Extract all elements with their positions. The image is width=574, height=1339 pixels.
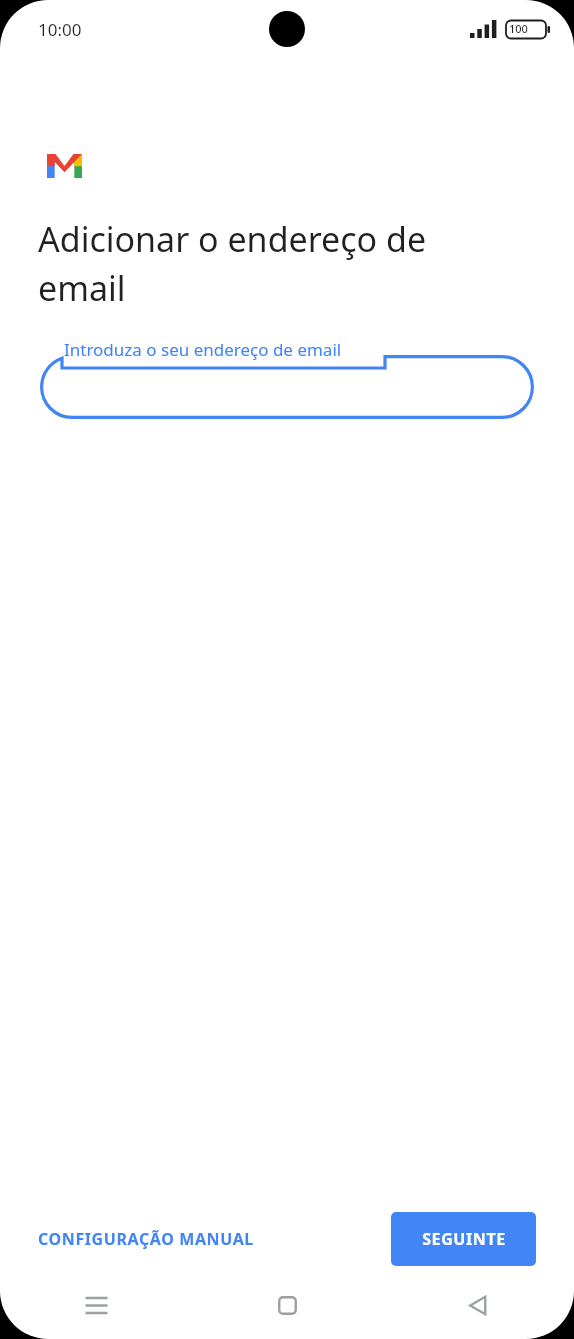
staticText: SEGUINTE	[422, 1228, 506, 1250]
staticText: Introduza o seu endereço de email	[64, 338, 342, 361]
staticText: CONFIGURAÇÃO MANUAL	[38, 1228, 254, 1250]
button[interactable]: Back	[383, 1271, 574, 1339]
button[interactable]: Introduza o seu endereço de email	[40, 333, 534, 419]
staticText: 10:00	[38, 18, 82, 41]
button[interactable]: SEGUINTE	[391, 1212, 536, 1266]
staticText: 100	[509, 21, 528, 36]
staticText: Adicionar o endereço de email	[38, 216, 504, 311]
button[interactable]: CONFIGURAÇÃO MANUAL	[38, 1214, 254, 1264]
button[interactable]: Home	[192, 1271, 383, 1339]
button[interactable]: Recent apps	[0, 1271, 192, 1339]
